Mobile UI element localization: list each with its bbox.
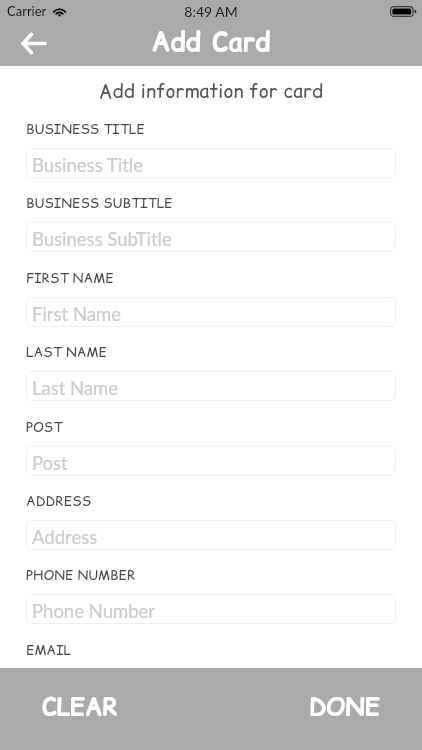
button[interactable]: Address xyxy=(26,520,396,550)
button[interactable]: Last Name xyxy=(26,371,396,401)
button[interactable]: Email xyxy=(26,669,396,699)
staticText: Add information for card xyxy=(0,78,422,105)
button[interactable]: DONE xyxy=(293,680,396,733)
button[interactable]: Phone Number xyxy=(26,594,396,624)
staticText: Carrier xyxy=(7,3,47,19)
staticText: Business SubTitle xyxy=(32,228,172,250)
staticText: POST xyxy=(26,418,63,437)
staticText: First Name xyxy=(32,303,121,325)
staticText: ADDRESS xyxy=(26,492,91,511)
staticText: DONE xyxy=(309,690,380,723)
staticText: Address xyxy=(32,526,98,548)
staticText: CLEAR xyxy=(42,690,118,723)
staticText: BUSINESS TITLE xyxy=(26,120,145,139)
staticText: Business Title xyxy=(32,154,143,176)
button[interactable]: Business SubTitle xyxy=(26,222,396,252)
staticText: FIRST NAME xyxy=(26,269,114,288)
staticText: PHONE NUMBER xyxy=(26,566,136,585)
staticText: Phone Number xyxy=(32,600,156,622)
button[interactable]: Post xyxy=(26,446,396,476)
staticText: Last Name xyxy=(32,377,119,399)
staticText: BUSINESS SUBTITLE xyxy=(26,194,173,213)
button[interactable]: Back xyxy=(12,26,56,60)
staticText: EMAIL xyxy=(26,641,72,660)
button[interactable]: First Name xyxy=(26,297,396,327)
staticText: Post xyxy=(32,452,68,474)
staticText: 8:49 AM xyxy=(0,3,422,20)
staticText: LAST NAME xyxy=(26,343,107,362)
button[interactable]: Business Title xyxy=(26,148,396,178)
staticText: Add Card xyxy=(0,24,422,60)
button[interactable]: CLEAR xyxy=(26,680,134,733)
